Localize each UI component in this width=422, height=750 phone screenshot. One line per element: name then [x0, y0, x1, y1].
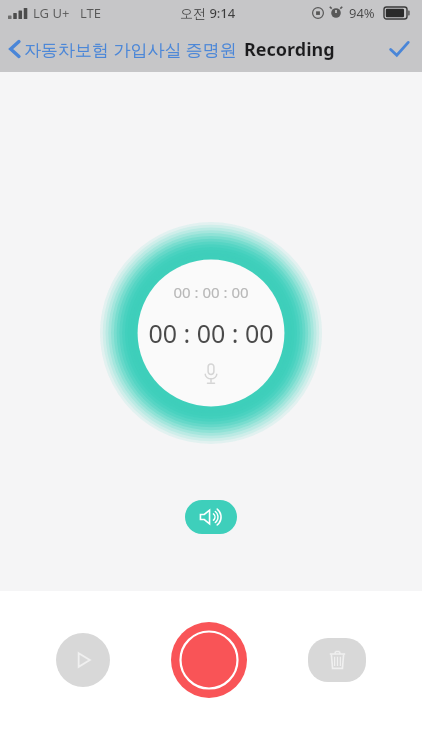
staticText: LG U+ — [33, 4, 70, 22]
button[interactable]: Delete — [308, 638, 366, 682]
staticText: 자동차보험 가입사실 증명원 — [24, 38, 237, 61]
button[interactable]: Record — [171, 622, 247, 698]
button[interactable]: Confirm — [376, 26, 422, 72]
staticText: LTE — [80, 4, 102, 22]
staticText: 00 : 00 : 00 — [173, 282, 249, 302]
staticText: 오전 9:14 — [180, 4, 236, 22]
staticText: 94% — [349, 4, 375, 22]
button[interactable]: Speaker — [185, 500, 237, 534]
button[interactable]: 자동차보험 가입사실 증명원 — [6, 26, 422, 72]
button[interactable]: Play — [56, 633, 110, 687]
staticText: Recording — [244, 37, 335, 62]
staticText: 00 : 00 : 00 — [148, 316, 274, 350]
